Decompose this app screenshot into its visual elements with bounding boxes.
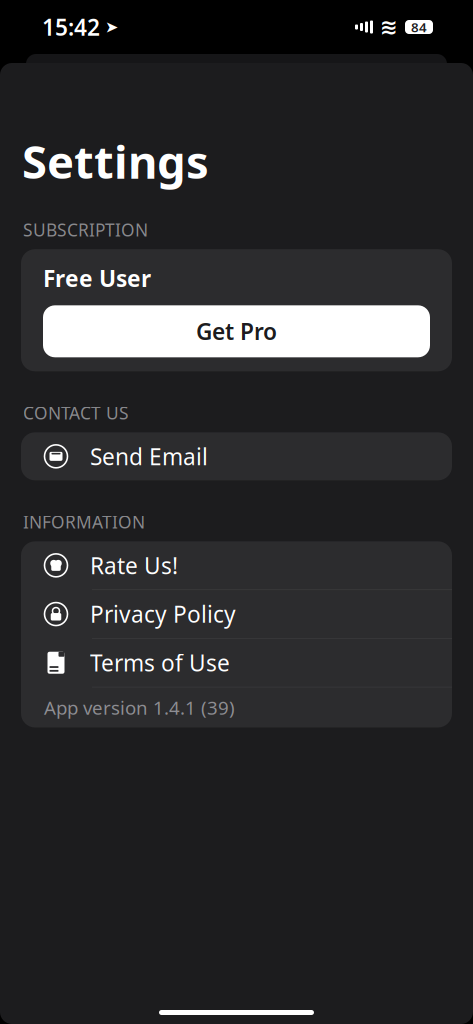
staticText: ➤ xyxy=(105,18,118,36)
button[interactable]: Get Pro xyxy=(43,305,430,357)
staticText: 84 xyxy=(411,18,427,36)
staticText: Privacy Policy xyxy=(90,599,236,629)
staticText: SUBSCRIPTION xyxy=(23,218,148,241)
button[interactable]: Terms of Use xyxy=(21,639,452,687)
button[interactable]: Privacy Policy xyxy=(21,590,452,638)
staticText: Settings xyxy=(22,131,209,191)
staticText: Send Email xyxy=(90,441,208,471)
staticText: CONTACT US xyxy=(23,401,129,424)
staticText: Terms of Use xyxy=(90,648,230,678)
staticText: INFORMATION xyxy=(23,510,145,533)
staticText: Rate Us! xyxy=(90,550,178,580)
button[interactable]: Send Email xyxy=(21,432,452,480)
staticText: Free User xyxy=(43,263,151,293)
staticText: ≋ xyxy=(380,15,398,39)
staticText: Get Pro xyxy=(196,316,277,346)
staticText: 15:42 xyxy=(42,12,100,42)
button[interactable]: Rate Us! xyxy=(21,541,452,589)
staticText: App version 1.4.1 (39) xyxy=(44,695,235,720)
